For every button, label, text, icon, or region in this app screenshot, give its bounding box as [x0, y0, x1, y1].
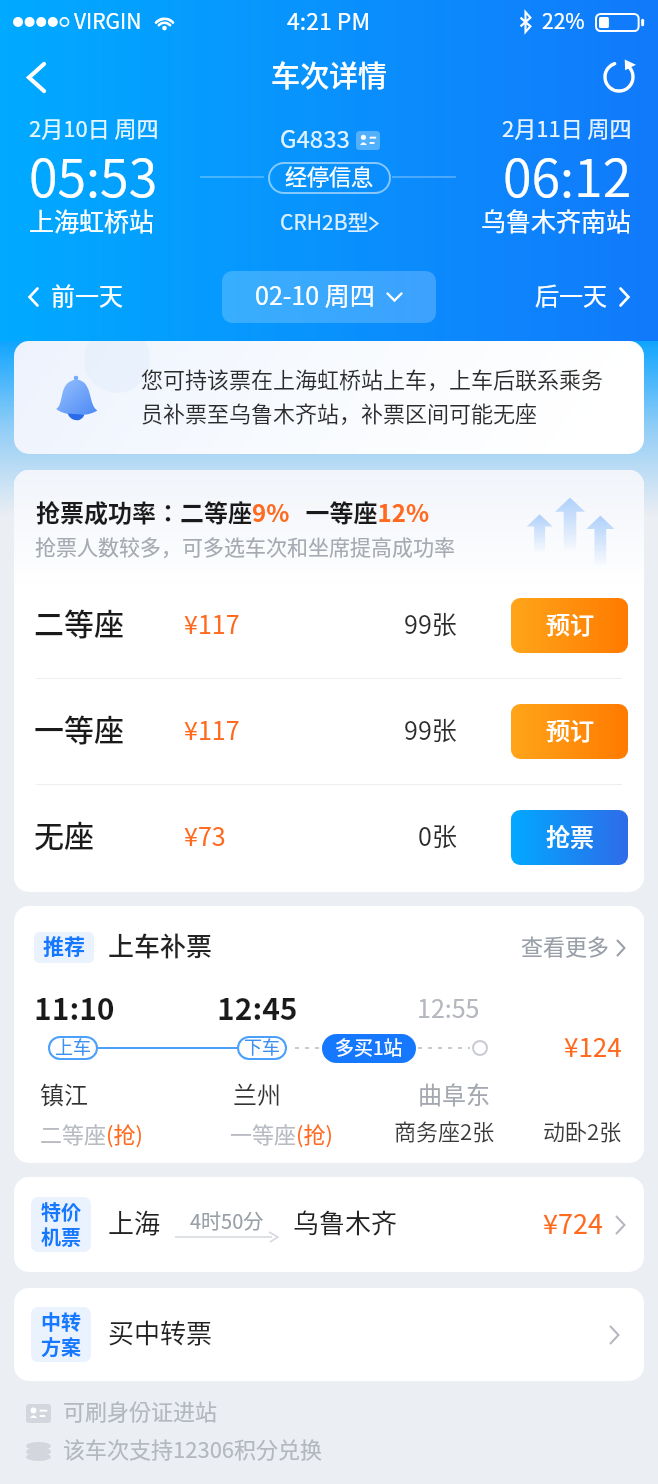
staticText: 一等座(抢) — [230, 1117, 333, 1149]
staticText: 方案 — [41, 1335, 81, 1360]
staticText: VIRGIN — [74, 11, 142, 34]
button[interactable]: 前一天 — [20, 274, 131, 320]
staticText: 11:10 — [34, 994, 115, 1027]
staticText: ¥73 — [184, 824, 226, 852]
button[interactable]: 预订 — [511, 598, 628, 653]
staticText: 2月10日 周四 — [29, 118, 159, 142]
staticText: 前一天 — [51, 284, 123, 310]
staticText: 多买1站 — [335, 1038, 403, 1059]
staticText: 您可持该票在上海虹桥站上车，上车后联系乘务 — [141, 369, 604, 393]
staticText: 抢票人数较多，可多选车次和坐席提高成功率 — [35, 537, 455, 560]
staticText: ¥124 — [564, 1034, 622, 1063]
staticText: ¥117 — [184, 718, 240, 746]
staticText: 员补票至乌鲁木齐站，补票区间可能无座 — [141, 403, 538, 427]
staticText: 查看更多 — [521, 936, 610, 960]
staticText: 22% — [542, 11, 585, 34]
staticText: 经停信息 — [285, 166, 374, 190]
staticText: 商务座2张 — [394, 1121, 495, 1145]
staticText: 该车次支持12306积分兑换 — [63, 1439, 323, 1463]
button[interactable]: 抢票 — [511, 810, 628, 865]
staticText: 4:21 PM — [287, 10, 371, 35]
staticText: 下车 — [244, 1038, 280, 1058]
staticText: 上海虹桥站 — [29, 209, 155, 237]
staticText: G4833 — [280, 127, 350, 153]
staticText: 99张 — [404, 718, 457, 746]
button[interactable]: 您可持该票在上海虹桥站上车，上车后联系乘务 — [14, 341, 644, 454]
staticText: 2月11日 周四 — [502, 118, 632, 142]
staticText: 兰州 — [233, 1083, 281, 1109]
staticText: 02-10 周四 — [255, 283, 375, 311]
button[interactable]: 预订 — [511, 704, 628, 759]
staticText: ¥117 — [184, 612, 240, 640]
staticText: 无座 — [34, 821, 94, 854]
button[interactable]: 特价 — [14, 1177, 644, 1272]
staticText: 12:45 — [217, 994, 298, 1027]
staticText: 乌鲁木齐 — [293, 1210, 398, 1239]
staticText: 抢票 — [546, 825, 594, 851]
staticText: 镇江 — [40, 1083, 88, 1109]
button[interactable]: 查看更多 — [521, 936, 626, 960]
staticText: CRH2B型 — [280, 212, 369, 235]
staticText: 车次详情 — [271, 61, 388, 93]
staticText: 12:55 — [417, 996, 480, 1024]
button[interactable]: 经停信息 — [268, 162, 391, 194]
staticText: 0张 — [418, 824, 457, 852]
staticText: 4时50分 — [190, 1211, 264, 1233]
staticText: 曲阜东 — [418, 1083, 490, 1109]
staticText: 后一天 — [535, 284, 607, 310]
staticText: 上车 — [55, 1038, 91, 1058]
staticText: 二等座 — [34, 609, 124, 642]
staticText: 机票 — [41, 1225, 81, 1250]
button[interactable]: 02-10 周四 — [222, 271, 436, 323]
staticText: 预订 — [546, 719, 594, 745]
staticText: 06:12 — [503, 151, 632, 209]
staticText: 推荐 — [43, 936, 85, 959]
staticText: 中转 — [41, 1310, 81, 1335]
staticText: 特价 — [41, 1200, 81, 1225]
staticText: 乌鲁木齐南站 — [481, 209, 632, 237]
staticText: 二等座(抢) — [40, 1117, 143, 1149]
staticText: 动卧2张 — [543, 1121, 622, 1145]
button[interactable]: Back — [0, 44, 72, 110]
button[interactable]: 中转 — [14, 1288, 644, 1381]
staticText: 上车补票 — [108, 933, 213, 962]
staticText: ¥724 — [543, 1210, 603, 1240]
staticText: 买中转票 — [108, 1320, 213, 1349]
staticText: 可刷身份证进站 — [63, 1401, 218, 1425]
staticText: 一等座 — [34, 715, 124, 748]
staticText: 上海 — [108, 1210, 161, 1239]
staticText: 抢票成功率：二等座9% 一等座12% — [36, 494, 430, 529]
button[interactable]: CRH2B型 — [280, 212, 379, 235]
button[interactable]: Refresh — [580, 44, 658, 110]
staticText: 05:53 — [29, 151, 158, 209]
staticText: 预订 — [546, 613, 594, 639]
staticText: 99张 — [404, 612, 457, 640]
button[interactable]: 后一天 — [527, 274, 638, 320]
